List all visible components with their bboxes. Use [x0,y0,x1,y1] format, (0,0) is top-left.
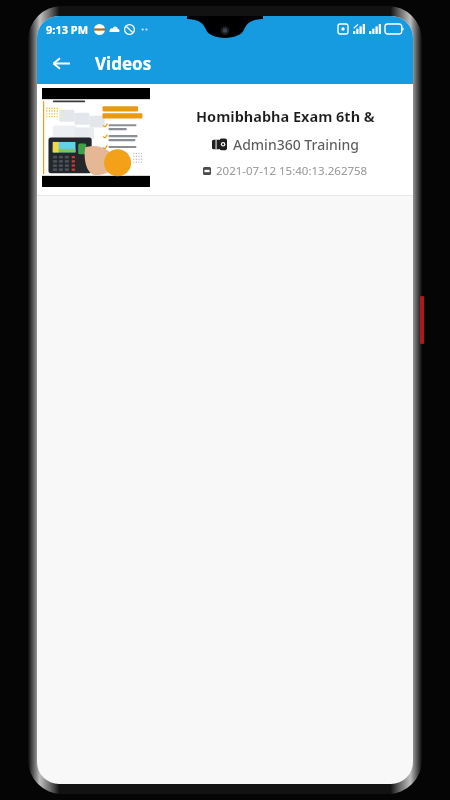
staticText: Videos [95,52,152,75]
button[interactable]: Back [43,45,79,81]
staticText: 2021-07-12 15:40:13.262758 [216,163,368,179]
button[interactable]: Homibhabha Exam 6th & [37,84,413,196]
staticText: 9:13 PM [46,22,89,37]
staticText: Homibhabha Exam 6th & [196,106,375,126]
staticText: Admin360 Training [233,135,359,154]
